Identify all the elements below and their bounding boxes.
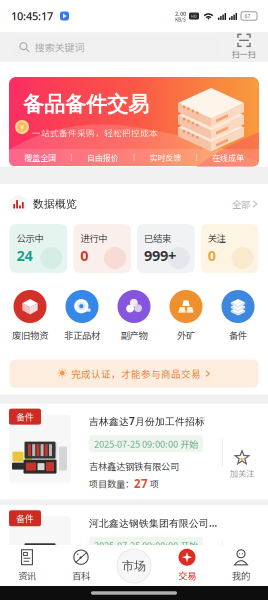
button[interactable]: 备件 [212,290,264,342]
staticText: 数据概览 [33,197,77,211]
staticText: 一站式备件采购，轻松把控成本 [32,126,158,139]
button[interactable]: 完成认证，才能参与商品交易 [9,360,258,388]
staticText: 67 [244,12,250,20]
button[interactable]: 公示中 [9,224,67,273]
staticText: 0 [208,246,216,265]
staticText: 2025-07-25 09:00:00 开始 [94,437,198,450]
staticText: 非正品材 [64,328,100,342]
button[interactable]: 河北鑫达钢铁集团有限公司-供应部... [0,505,268,600]
staticText: 吉林鑫达钢铁有限公司 [89,459,179,473]
staticText: 2025-07-25 09:00:00 开始 [94,539,198,552]
staticText: 备品备件交易 [23,91,149,117]
button[interactable]: 关注 [201,224,259,273]
button[interactable]: 百科 [54,545,108,586]
staticText: 备件 [229,328,247,342]
staticText: KB/S [175,16,186,23]
staticText: 项目数量： [89,578,134,592]
button[interactable]: 全部 [232,197,258,211]
staticText: 关注 [208,231,226,245]
staticText: 全部 [232,197,250,211]
button[interactable]: 交易 [160,545,214,586]
staticText: 加关注 [230,569,254,581]
staticText: 百科 [72,569,90,582]
staticText: 公示中 [16,231,43,245]
staticText: HD [191,13,197,19]
staticText: 搜索关键词 [34,40,84,54]
staticText: 交易 [178,569,196,582]
button[interactable]: 外矿 [160,290,212,342]
staticText: 2.00 [175,9,186,17]
button[interactable]: 扫一扫 [229,34,259,60]
staticText: 项 [148,578,159,592]
staticText: 扫一扫 [232,48,256,60]
button[interactable]: 进行中 [73,224,131,273]
staticText: 废旧物资 [12,328,48,342]
staticText: 吉林鑫达7月份加工件招标 [89,415,205,428]
staticText: 已结束 [144,231,171,245]
staticText: 实时反馈 [149,152,181,163]
staticText: 备件 [16,512,34,525]
staticText: 在线成单 [212,152,244,163]
button[interactable]: 我的 [214,545,268,586]
button[interactable]: 非正品材 [56,290,108,342]
staticText: 自由报价 [87,152,119,163]
staticText: 项目数量： [89,477,134,490]
staticText: 外矿 [177,328,195,342]
staticText: 999+ [144,246,176,265]
staticText: 0 [80,246,88,265]
staticText: 项 [148,477,159,490]
staticText: 12 [134,577,148,593]
staticText: 覆盖全国 [24,152,56,163]
staticText: 进行中 [80,231,107,245]
button[interactable]: 搜索关键词 [9,34,220,60]
staticText: 完成认证，才能参与商品交易 [71,367,201,381]
staticText: 资讯 [18,569,36,582]
button[interactable]: 废旧物资 [4,290,56,342]
button[interactable]: ¥ [9,77,259,167]
staticText: 备件 [16,410,34,423]
button[interactable]: 资讯 [0,545,54,586]
staticText: 河北鑫达钢铁集团有限公司 [89,561,197,574]
button[interactable]: 市场 [117,549,151,583]
staticText: 10:45:17 [11,8,53,23]
button[interactable]: 已结束 [137,224,195,273]
staticText: ¥ [20,122,24,132]
staticText: 副产物 [120,328,147,342]
button[interactable]: 副产物 [108,290,160,342]
button[interactable]: 吉林鑫达7月份加工件招标 [0,404,268,499]
staticText: 加关注 [230,467,254,479]
staticText: 市场 [122,558,146,573]
staticText: 27 [134,476,148,491]
staticText: 我的 [232,569,250,582]
staticText: 24 [16,246,32,265]
staticText: 河北鑫达钢铁集团有限公司-供应部... [89,516,217,530]
